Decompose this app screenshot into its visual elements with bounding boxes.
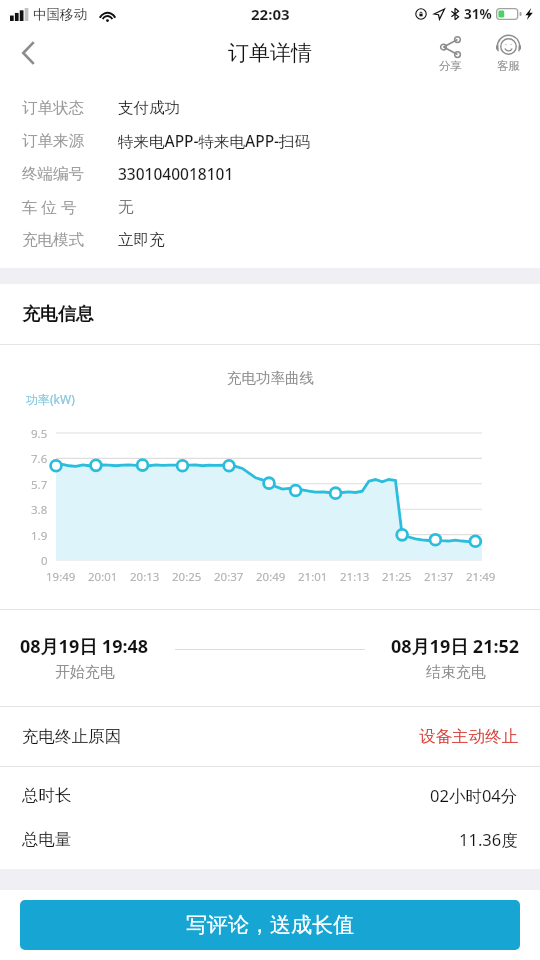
staticText: 中国移动 xyxy=(33,6,87,23)
staticText: 31% xyxy=(464,5,492,23)
staticText: 分享 xyxy=(439,59,462,73)
staticText: 立即充 xyxy=(118,230,165,250)
button[interactable]: 车 位 号 xyxy=(22,190,540,223)
staticText: 9.5 xyxy=(31,426,48,442)
staticText: 19:49 xyxy=(46,569,76,585)
staticText: 车 位 号 xyxy=(22,196,106,217)
staticText: 20:01 xyxy=(88,569,118,585)
staticText: 20:25 xyxy=(172,569,202,585)
staticText: 3.8 xyxy=(31,502,48,518)
staticText: 终端编号 xyxy=(22,164,106,184)
staticText: 21:25 xyxy=(382,569,412,585)
staticText: 08月19日 21:52 xyxy=(391,634,520,659)
staticText: 02小时04分 xyxy=(430,784,518,807)
staticText: 客服 xyxy=(497,59,520,73)
staticText: 支付成功 xyxy=(118,98,180,118)
staticText: 总时长 xyxy=(22,785,72,806)
staticText: 充电模式 xyxy=(22,230,106,250)
staticText: 11.36度 xyxy=(459,828,518,851)
staticText: 结束充电 xyxy=(426,663,486,682)
staticText: 3301040018101 xyxy=(118,163,234,184)
staticText: 充电终止原因 xyxy=(22,726,121,747)
staticText: 充电功率曲线 xyxy=(227,369,314,387)
staticText: 订单状态 xyxy=(22,98,106,118)
staticText: 订单详情 xyxy=(228,40,312,66)
staticText: 写评论，送成长值 xyxy=(186,912,354,938)
button[interactable]: 订单状态 xyxy=(22,91,540,124)
staticText: 订单来源 xyxy=(22,131,106,151)
staticText: 1.9 xyxy=(31,528,48,544)
button[interactable]: 充电模式 xyxy=(22,223,540,256)
staticText: 无 xyxy=(118,197,134,217)
button[interactable]: 终端编号 xyxy=(22,157,540,190)
staticText: 特来电APP-特来电APP-扫码 xyxy=(118,130,311,151)
staticText: 21:13 xyxy=(340,569,370,585)
staticText: 20:37 xyxy=(214,569,244,585)
button[interactable]: 分享 xyxy=(426,34,474,73)
button[interactable]: 总时长 xyxy=(22,773,518,817)
button[interactable]: 订单来源 xyxy=(22,124,540,157)
staticText: 功率(kW) xyxy=(26,391,75,407)
staticText: 08月19日 19:48 xyxy=(20,634,149,659)
staticText: 21:37 xyxy=(424,569,454,585)
staticText: 7.6 xyxy=(31,451,48,467)
staticText: 5.7 xyxy=(31,477,48,493)
button[interactable]: 充电终止原因 xyxy=(22,707,518,766)
staticText: 21:01 xyxy=(298,569,328,585)
button[interactable]: 客服 xyxy=(484,34,532,73)
button[interactable]: 写评论，送成长值 xyxy=(20,900,520,950)
staticText: 20:13 xyxy=(130,569,160,585)
staticText: 设备主动终止 xyxy=(419,726,518,747)
staticText: 22:03 xyxy=(251,4,290,24)
staticText: 0 xyxy=(41,553,48,569)
button[interactable]: 总电量 xyxy=(22,817,518,861)
staticText: 21:49 xyxy=(466,569,496,585)
staticText: 充电信息 xyxy=(22,303,94,326)
staticText: 开始充电 xyxy=(55,663,115,682)
staticText: 20:49 xyxy=(256,569,286,585)
button[interactable]: 返回 xyxy=(0,28,56,78)
staticText: 总电量 xyxy=(22,829,72,850)
